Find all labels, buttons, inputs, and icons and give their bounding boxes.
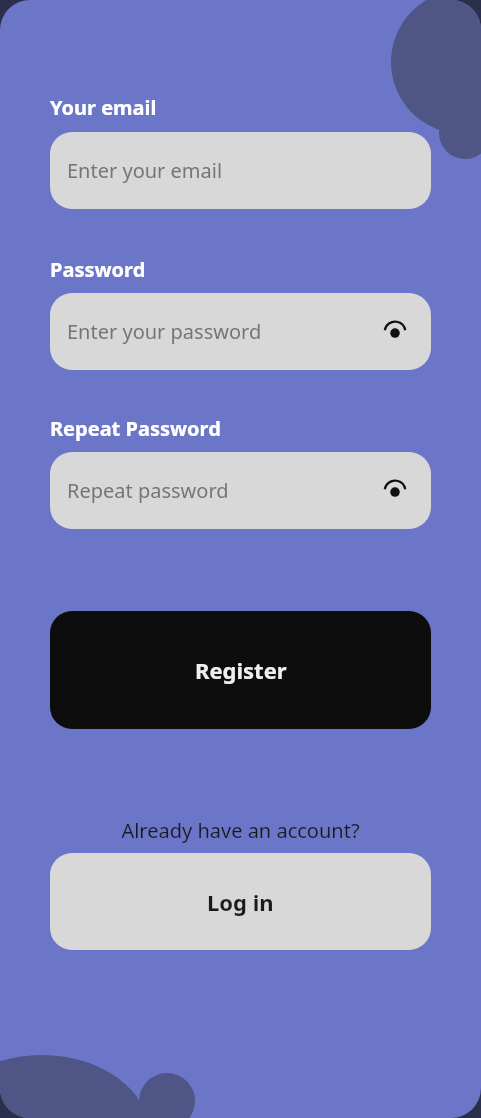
button[interactable]: Enter your email — [50, 132, 431, 209]
button[interactable]: Log in — [50, 853, 431, 950]
staticText: Enter your email — [67, 157, 223, 184]
button[interactable]: Show password — [379, 475, 411, 507]
staticText: Already have an account? — [50, 817, 431, 844]
staticText: Register — [195, 655, 287, 685]
button[interactable]: Show password — [379, 316, 411, 348]
button[interactable]: Enter your password — [50, 293, 431, 370]
button[interactable]: Repeat password — [50, 452, 431, 529]
staticText: Repeat Password — [50, 415, 221, 442]
staticText: Your email — [50, 94, 157, 121]
staticText: Repeat password — [67, 477, 229, 504]
staticText: Enter your password — [67, 318, 262, 345]
staticText: Password — [50, 256, 146, 283]
staticText: Log in — [207, 887, 274, 917]
button[interactable]: Register — [50, 611, 431, 729]
